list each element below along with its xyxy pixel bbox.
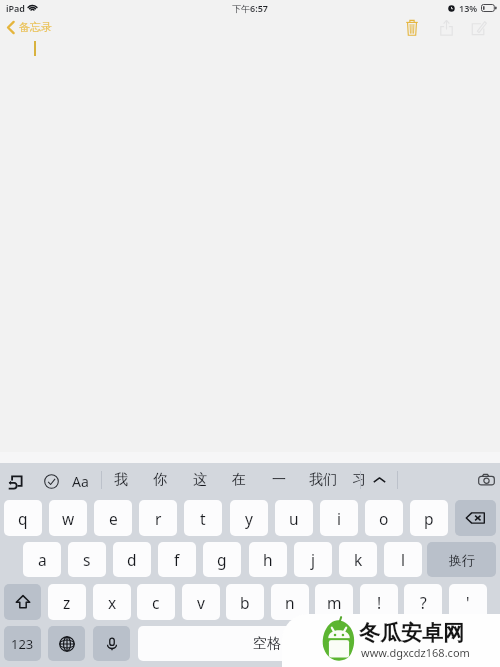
staticText: www.dgxcdz168.com: [361, 645, 470, 660]
button[interactable]: Delete note: [396, 14, 428, 40]
staticText: z: [63, 592, 71, 613]
button[interactable]: Share: [430, 14, 462, 40]
button[interactable]: d: [113, 542, 151, 577]
staticText: g: [217, 549, 227, 570]
button[interactable]: n: [271, 584, 309, 620]
staticText: ': [466, 592, 470, 613]
button[interactable]: Backspace: [455, 500, 496, 536]
staticText: f: [174, 549, 180, 570]
staticText: w: [62, 508, 75, 529]
staticText: 一: [272, 471, 286, 489]
staticText: e: [109, 508, 118, 529]
button[interactable]: j: [294, 542, 332, 577]
button[interactable]: k: [339, 542, 377, 577]
button[interactable]: f: [158, 542, 196, 577]
staticText: r: [155, 508, 162, 529]
staticText: 你: [153, 471, 167, 489]
button[interactable]: e: [94, 500, 132, 536]
staticText: 13%: [459, 2, 478, 14]
staticText: t: [200, 508, 206, 529]
staticText: 下午6:57: [232, 2, 268, 14]
button[interactable]: Undo: [3, 469, 27, 493]
button[interactable]: w: [49, 500, 87, 536]
staticText: v: [197, 592, 205, 613]
staticText: o: [379, 508, 389, 529]
button[interactable]: ?: [404, 584, 442, 620]
button[interactable]: b: [226, 584, 264, 620]
staticText: c: [152, 592, 160, 613]
button[interactable]: !: [360, 584, 398, 620]
staticText: m: [327, 592, 342, 613]
button[interactable]: Dictation: [93, 626, 130, 661]
staticText: p: [424, 508, 434, 529]
button[interactable]: 空格: [138, 626, 395, 661]
staticText: iPad: [6, 2, 25, 14]
button[interactable]: 你: [142, 463, 178, 497]
staticText: n: [285, 592, 295, 613]
button[interactable]: a: [23, 542, 61, 577]
button[interactable]: ': [449, 584, 487, 620]
staticText: q: [18, 508, 28, 529]
button[interactable]: m: [315, 584, 353, 620]
button[interactable]: 这: [182, 463, 218, 497]
button[interactable]: Switch keyboard: [48, 626, 85, 661]
button[interactable]: l: [384, 542, 422, 577]
staticText: 换行: [449, 552, 475, 568]
button[interactable]: 习: [348, 463, 370, 497]
staticText: 这: [193, 471, 207, 489]
button[interactable]: r: [139, 500, 177, 536]
staticText: Aa: [72, 472, 89, 491]
button[interactable]: g: [203, 542, 241, 577]
staticText: 冬瓜安卓网: [359, 620, 464, 646]
staticText: h: [263, 549, 273, 570]
button[interactable]: 换行: [427, 542, 496, 577]
button[interactable]: p: [410, 500, 448, 536]
staticText: l: [401, 549, 405, 570]
staticText: 在: [232, 471, 246, 489]
button[interactable]: o: [365, 500, 403, 536]
staticText: 123: [11, 635, 34, 653]
staticText: 备忘录: [19, 20, 52, 34]
staticText: y: [245, 508, 253, 529]
staticText: 我: [114, 471, 128, 489]
button[interactable]: v: [182, 584, 220, 620]
button[interactable]: Confirm: [39, 469, 63, 493]
button[interactable]: Shift: [4, 584, 41, 620]
button[interactable]: Camera: [474, 468, 498, 492]
staticText: a: [38, 549, 47, 570]
button[interactable]: z: [48, 584, 86, 620]
button[interactable]: u: [275, 500, 313, 536]
staticText: k: [354, 549, 363, 570]
button[interactable]: t: [184, 500, 222, 536]
button[interactable]: i: [320, 500, 358, 536]
staticText: u: [289, 508, 299, 529]
button[interactable]: Expand candidates: [367, 468, 391, 492]
staticText: i: [337, 508, 341, 529]
button[interactable]: x: [93, 584, 131, 620]
button[interactable]: 备忘录: [6, 20, 56, 34]
button[interactable]: 我们: [305, 463, 341, 497]
staticText: b: [240, 592, 250, 613]
button[interactable]: 123: [4, 626, 41, 661]
staticText: !: [377, 592, 382, 613]
staticText: s: [83, 549, 91, 570]
button[interactable]: Text format: [68, 469, 92, 493]
button[interactable]: q: [4, 500, 42, 536]
staticText: x: [108, 592, 117, 613]
button[interactable]: New note: [463, 14, 495, 40]
staticText: 习: [352, 471, 366, 489]
button[interactable]: 我: [103, 463, 139, 497]
button[interactable]: h: [249, 542, 287, 577]
staticText: 我们: [309, 471, 337, 489]
staticText: 空格: [253, 635, 281, 653]
staticText: j: [311, 549, 315, 570]
staticText: ?: [420, 592, 427, 613]
button[interactable]: y: [230, 500, 268, 536]
button[interactable]: s: [68, 542, 106, 577]
button[interactable]: 在: [221, 463, 257, 497]
button[interactable]: c: [137, 584, 175, 620]
staticText: d: [127, 549, 137, 570]
button[interactable]: 一: [261, 463, 297, 497]
